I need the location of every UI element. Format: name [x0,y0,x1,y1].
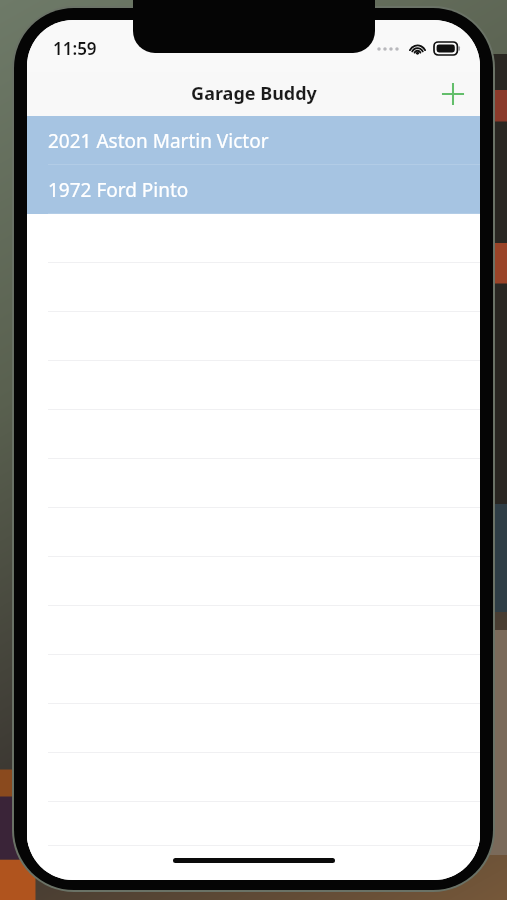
staticText: Garage Buddy [191,81,317,106]
staticText: 11:59 [53,37,97,60]
button[interactable] [27,802,480,846]
staticText: 2021 Aston Martin Victor [48,128,269,154]
button[interactable]: 1972 Ford Pinto [27,165,480,214]
button[interactable]: Add vehicle [432,73,474,115]
button[interactable]: 2021 Aston Martin Victor [27,116,480,165]
staticText: 1972 Ford Pinto [48,177,189,203]
